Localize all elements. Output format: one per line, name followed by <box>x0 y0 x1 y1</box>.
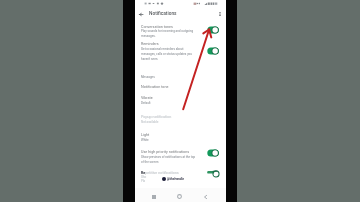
staticText: Vibrate <box>141 96 153 100</box>
button[interactable] <box>135 93 226 108</box>
staticText: Popup notification <box>141 115 172 119</box>
button[interactable] <box>135 147 226 167</box>
button[interactable] <box>135 22 226 42</box>
staticText: Use high priority notifications <box>141 150 190 154</box>
button[interactable]: Recent apps <box>148 191 159 202</box>
button[interactable] <box>135 82 226 93</box>
button[interactable]: Back <box>200 191 211 202</box>
staticText: Not available <box>141 120 197 124</box>
staticText: Get occasional reminders about messages,… <box>141 47 197 61</box>
staticText: Notification tone <box>141 85 169 89</box>
staticText: Notifications <box>149 11 177 17</box>
staticText: Repetitive notifications <box>141 171 179 175</box>
staticText: Light <box>141 133 150 137</box>
staticText: Messages <box>141 75 155 79</box>
staticText: Play sounds for incoming and outgoing me… <box>141 29 197 38</box>
button[interactable] <box>135 130 226 145</box>
staticText: White <box>141 138 197 142</box>
button[interactable]: Home <box>174 191 185 202</box>
staticText: Default <box>141 101 197 105</box>
staticText: Conversation tones <box>141 25 174 29</box>
button[interactable]: Toggle switch <box>201 147 221 159</box>
button[interactable] <box>135 39 226 63</box>
staticText: Re <box>141 171 146 175</box>
staticText: @thehandle <box>167 177 184 181</box>
staticText: Sho Pla <box>141 175 147 183</box>
button[interactable]: Toggle switch <box>201 24 221 36</box>
staticText: Show previews of notifications at the to… <box>141 155 197 164</box>
staticText: Reminders <box>141 42 159 46</box>
button[interactable]: Toggle switch <box>201 45 221 57</box>
button[interactable] <box>135 111 226 126</box>
button[interactable]: Back <box>135 8 147 20</box>
button[interactable]: More options <box>214 8 225 19</box>
